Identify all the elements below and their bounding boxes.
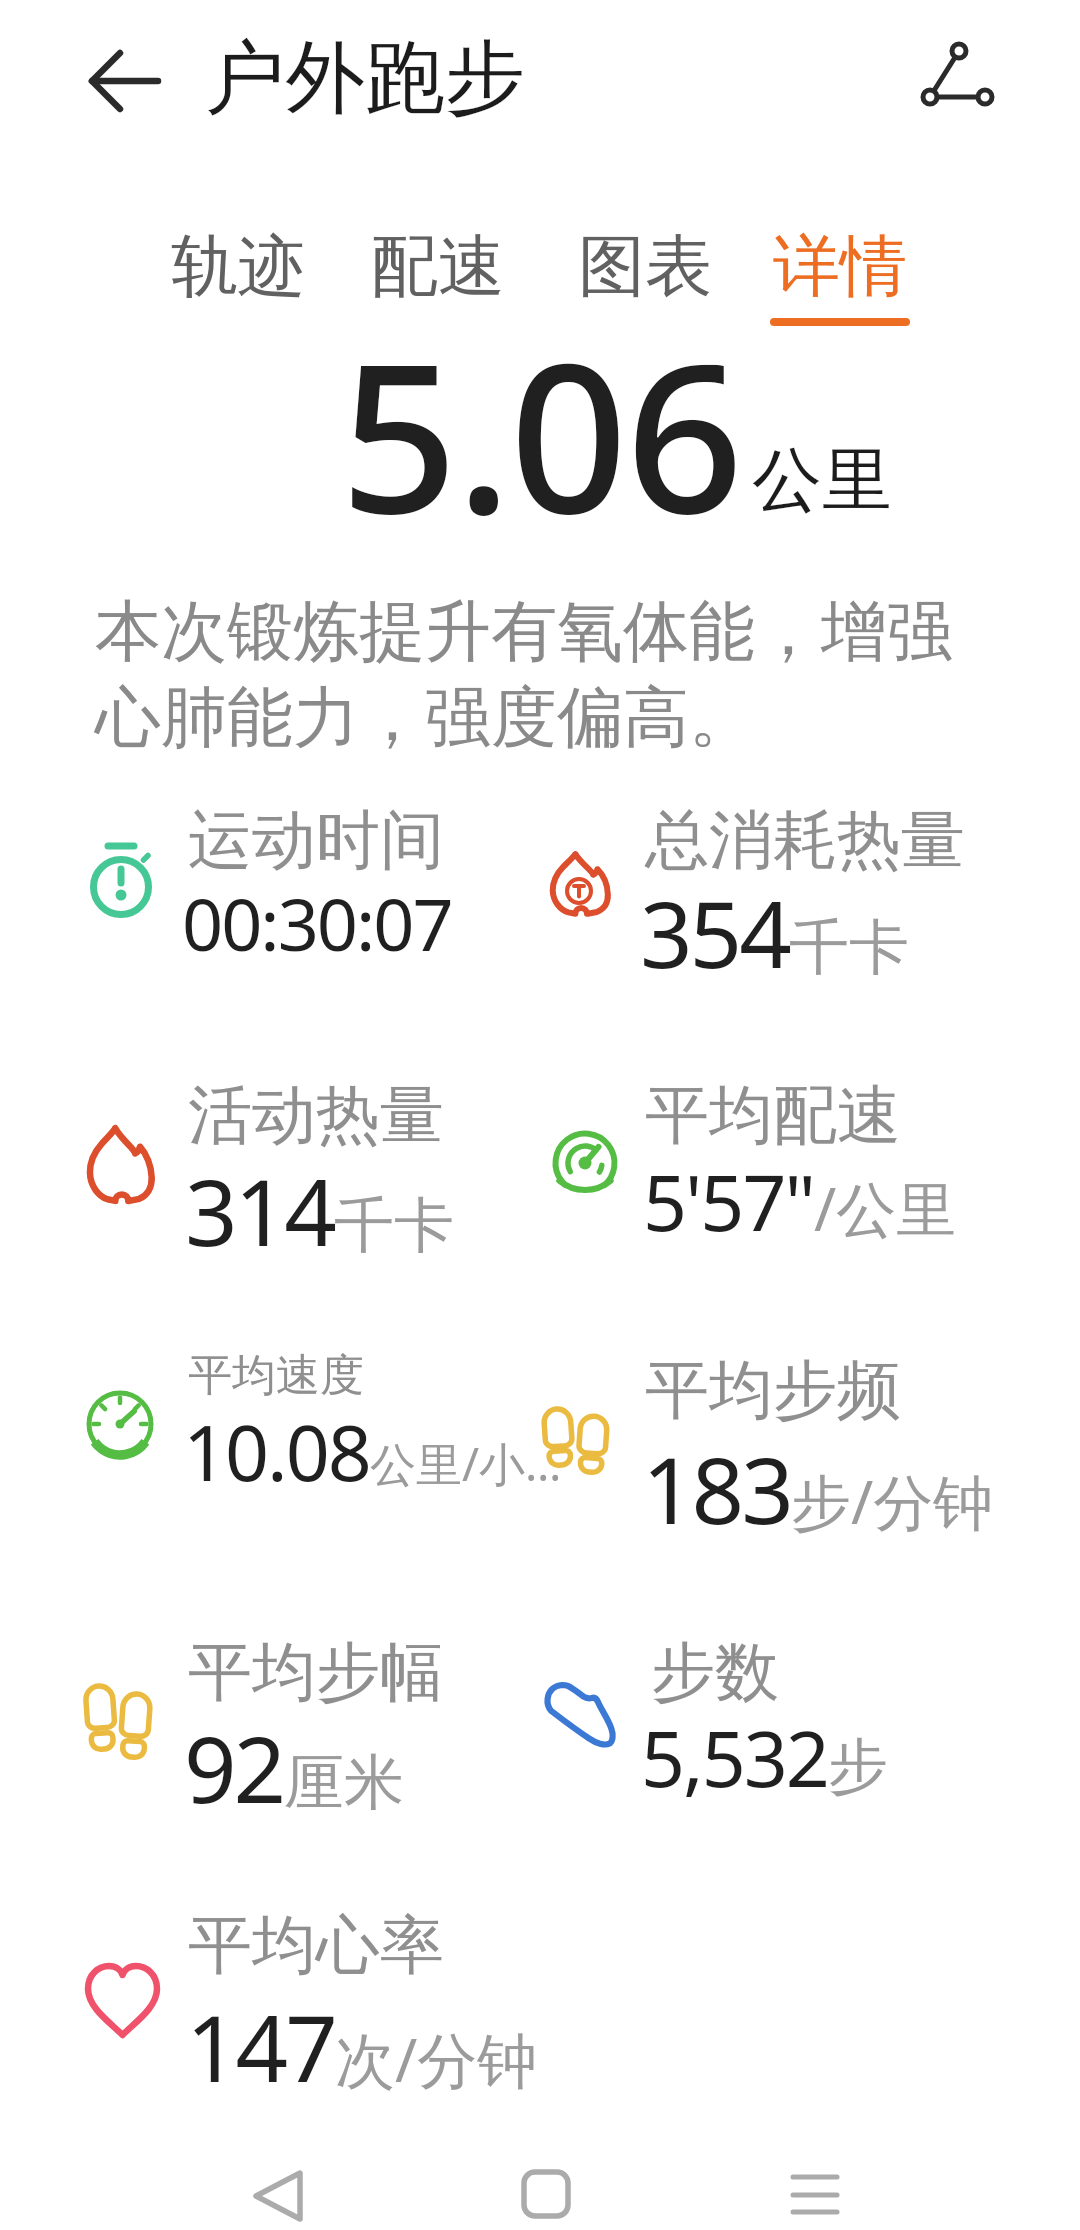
staticText: 运动时间 bbox=[188, 800, 444, 881]
staticText: 平均配速 bbox=[645, 1075, 901, 1156]
staticText: 步数 bbox=[651, 1632, 779, 1713]
staticText: 千卡 bbox=[334, 1188, 454, 1264]
staticText: 平均步频 bbox=[645, 1350, 901, 1431]
button[interactable] bbox=[60, 1340, 510, 1520]
staticText: 354 bbox=[640, 870, 789, 995]
staticText: 5,532 bbox=[641, 1705, 828, 1810]
staticText: 公里/小… bbox=[370, 1432, 562, 1495]
staticText: 平均速度 bbox=[188, 1348, 364, 1403]
staticText: 10.08 bbox=[183, 1399, 370, 1504]
staticText: 本次锻炼提升有氧体能，增强 bbox=[95, 590, 953, 673]
button[interactable] bbox=[530, 1065, 1010, 1245]
button[interactable] bbox=[895, 20, 1015, 135]
button[interactable] bbox=[60, 1895, 510, 2075]
staticText: 户外跑步 bbox=[205, 28, 525, 129]
staticText: 92 bbox=[184, 1705, 284, 1830]
staticText: 平均心率 bbox=[188, 1905, 444, 1986]
staticText: 图表 bbox=[578, 224, 712, 308]
staticText: 平均步幅 bbox=[188, 1632, 444, 1713]
staticText: 步 bbox=[828, 1729, 888, 1805]
button[interactable] bbox=[557, 205, 737, 330]
button[interactable] bbox=[465, 2150, 625, 2230]
staticText: 314 bbox=[185, 1148, 334, 1273]
button[interactable] bbox=[350, 205, 530, 330]
staticText: 详情 bbox=[773, 224, 907, 308]
staticText: 147 bbox=[186, 1984, 335, 2109]
button[interactable] bbox=[60, 790, 510, 970]
staticText: 厘米 bbox=[284, 1745, 404, 1821]
staticText: 活动热量 bbox=[188, 1075, 444, 1156]
staticText: 00:30:07 bbox=[182, 874, 452, 972]
button[interactable] bbox=[752, 205, 932, 330]
staticText: 千卡 bbox=[789, 910, 909, 986]
button[interactable] bbox=[55, 25, 170, 135]
staticText: 总消耗热量 bbox=[645, 800, 965, 881]
button[interactable] bbox=[530, 790, 1010, 970]
staticText: 次/分钟 bbox=[335, 2018, 538, 2100]
button[interactable] bbox=[60, 1065, 510, 1245]
staticText: 5.06 bbox=[340, 293, 742, 574]
staticText: /公里 bbox=[814, 1167, 957, 1249]
staticText: 轨迹 bbox=[171, 224, 305, 308]
staticText: 心肺能力，强度偏高。 bbox=[95, 676, 755, 759]
staticText: 183 bbox=[642, 1426, 791, 1551]
staticText: 步/分钟 bbox=[791, 1460, 994, 1542]
button[interactable] bbox=[150, 205, 330, 330]
staticText: 公里 bbox=[752, 437, 892, 525]
button[interactable] bbox=[530, 1620, 1010, 1800]
staticText: 5'57" bbox=[643, 1149, 814, 1254]
button[interactable] bbox=[200, 2150, 360, 2230]
button[interactable] bbox=[530, 1340, 1010, 1520]
button[interactable] bbox=[60, 1620, 510, 1800]
staticText: 配速 bbox=[371, 224, 505, 308]
button[interactable] bbox=[735, 2150, 895, 2230]
